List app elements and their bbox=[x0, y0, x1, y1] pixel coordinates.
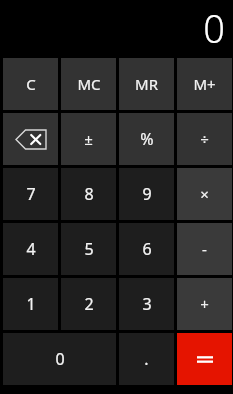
button[interactable]: 0 bbox=[3, 333, 116, 385]
staticText: 4 bbox=[26, 238, 36, 260]
staticText: 8 bbox=[84, 183, 94, 205]
button[interactable]: Backspace bbox=[3, 113, 58, 165]
button[interactable]: + bbox=[177, 278, 232, 330]
button[interactable]: ± bbox=[61, 113, 116, 165]
staticText: % bbox=[140, 128, 154, 150]
staticText: C bbox=[26, 74, 36, 94]
staticText: 0 bbox=[203, 2, 225, 54]
button[interactable]: 1 bbox=[3, 278, 58, 330]
staticText: M+ bbox=[193, 74, 216, 94]
button[interactable]: 2 bbox=[61, 278, 116, 330]
staticText: 1 bbox=[26, 293, 36, 315]
staticText: MR bbox=[135, 74, 158, 94]
button[interactable]: 4 bbox=[3, 223, 58, 275]
staticText: × bbox=[200, 184, 209, 204]
staticText: 6 bbox=[142, 238, 152, 260]
staticText: 3 bbox=[142, 293, 152, 315]
staticText: . bbox=[144, 348, 149, 370]
button[interactable]: 5 bbox=[61, 223, 116, 275]
button[interactable]: M+ bbox=[177, 58, 232, 110]
button[interactable]: MC bbox=[61, 58, 116, 110]
button[interactable]: 3 bbox=[119, 278, 174, 330]
staticText: MC bbox=[77, 74, 101, 94]
button[interactable]: 6 bbox=[119, 223, 174, 275]
staticText: - bbox=[202, 239, 207, 259]
button[interactable]: 7 bbox=[3, 168, 58, 220]
staticText: 9 bbox=[142, 183, 152, 205]
button[interactable]: 9 bbox=[119, 168, 174, 220]
button[interactable]: 8 bbox=[61, 168, 116, 220]
button[interactable]: × bbox=[177, 168, 232, 220]
staticText: 2 bbox=[84, 293, 94, 315]
button[interactable]: . bbox=[119, 333, 174, 385]
staticText: 5 bbox=[84, 238, 94, 260]
staticText: 7 bbox=[26, 183, 36, 205]
staticText: ± bbox=[84, 129, 93, 149]
button[interactable]: ÷ bbox=[177, 113, 232, 165]
staticText: + bbox=[200, 294, 209, 314]
button[interactable]: % bbox=[119, 113, 174, 165]
button[interactable]: C bbox=[3, 58, 58, 110]
button[interactable]: MR bbox=[119, 58, 174, 110]
button[interactable]: - bbox=[177, 223, 232, 275]
button[interactable] bbox=[177, 333, 232, 385]
staticText: 0 bbox=[55, 348, 65, 370]
staticText: ÷ bbox=[200, 129, 209, 149]
